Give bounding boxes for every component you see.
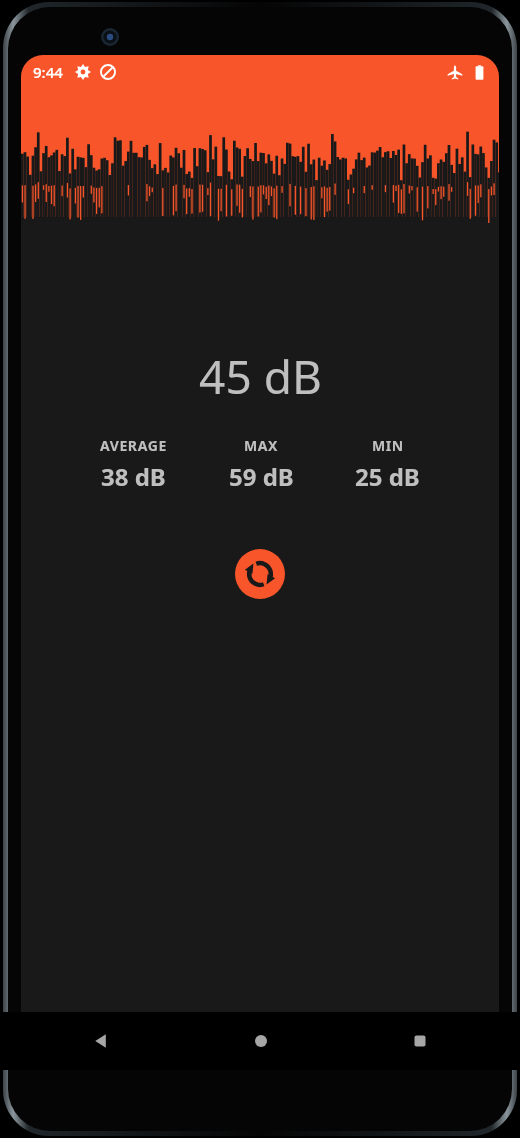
staticText: 38 dB bbox=[101, 460, 166, 493]
button[interactable]: Back bbox=[21, 1012, 181, 1070]
button[interactable]: Home bbox=[181, 1012, 340, 1070]
button[interactable]: Recents bbox=[340, 1012, 499, 1070]
staticText: MIN bbox=[372, 436, 404, 455]
staticText: 45 dB bbox=[199, 345, 322, 408]
staticText: AVERAGE bbox=[100, 436, 167, 455]
staticText: MAX bbox=[244, 436, 279, 455]
staticText: 9:44 bbox=[33, 62, 63, 82]
staticText: 59 dB bbox=[229, 460, 294, 493]
button[interactable]: Reset measurement bbox=[235, 549, 285, 599]
staticText: 25 dB bbox=[355, 460, 420, 493]
